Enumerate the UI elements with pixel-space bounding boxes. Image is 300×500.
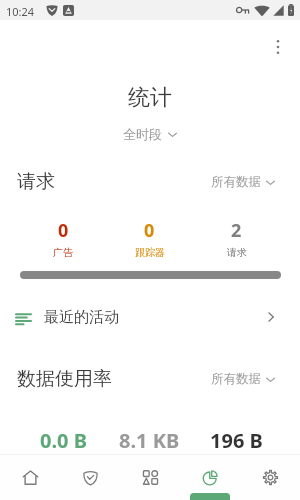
staticText: 全时段 <box>123 126 162 142</box>
staticText: 8.1 KB <box>119 427 180 454</box>
staticText: 所有数据 <box>211 174 261 190</box>
button[interactable]: 最近的活动 <box>0 300 300 334</box>
staticText: 196 B <box>210 427 263 454</box>
button[interactable]: 所有数据 <box>208 369 279 389</box>
button[interactable]: Statistics <box>180 455 240 500</box>
staticText: 跟踪器 <box>135 246 165 259</box>
staticText: 所有数据 <box>211 371 261 387</box>
staticText: 请求 <box>17 170 55 194</box>
staticText: 请求 <box>227 246 247 259</box>
button[interactable]: 全时段 <box>119 124 182 144</box>
staticText: 广告 <box>53 246 73 259</box>
button[interactable]: Home <box>0 455 60 500</box>
button[interactable]: Settings <box>240 455 300 500</box>
button[interactable]: 所有数据 <box>208 172 279 192</box>
staticText: 0 <box>58 218 69 243</box>
button[interactable]: More options <box>262 31 294 63</box>
button[interactable]: Protection <box>60 455 120 500</box>
staticText: 10:24 <box>6 4 35 19</box>
staticText: 数据使用率 <box>17 367 112 391</box>
staticText: 2 <box>231 218 242 243</box>
button[interactable]: Apps <box>120 455 180 500</box>
staticText: 统计 <box>0 84 300 112</box>
staticText: 0 <box>144 218 155 243</box>
staticText: 0.0 B <box>40 427 87 454</box>
staticText: 最近的活动 <box>44 308 119 327</box>
